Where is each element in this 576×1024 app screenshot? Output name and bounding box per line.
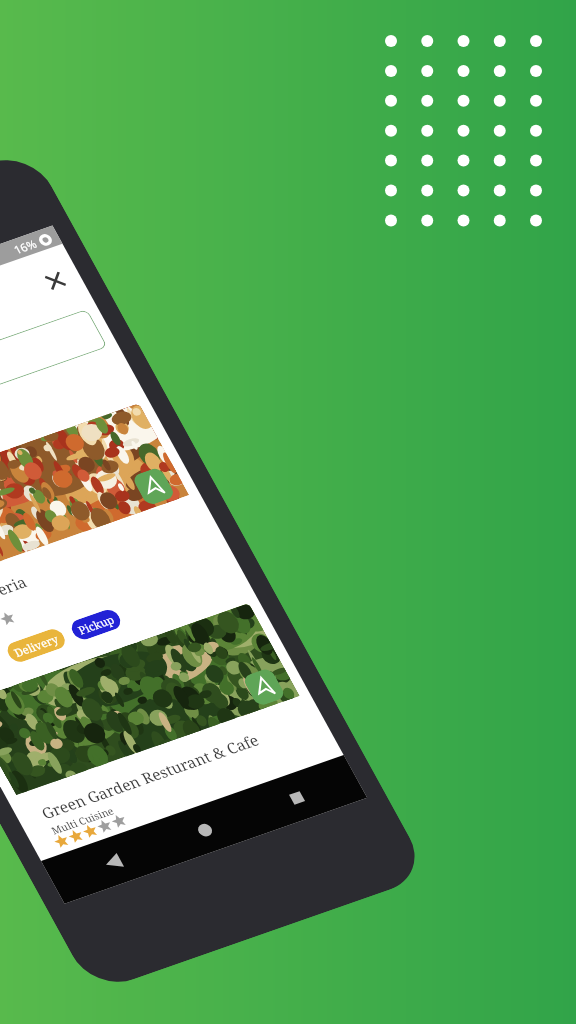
button[interactable]: Back	[92, 843, 134, 882]
button[interactable]: Home	[184, 811, 226, 850]
button[interactable]: Pickup	[62, 592, 130, 657]
button[interactable]: Navigate	[0, 313, 295, 781]
staticText: Green Garden Resturant & Cafe	[32, 661, 268, 891]
button[interactable]: Navigate	[0, 513, 392, 965]
staticText: Delivery	[7, 617, 65, 674]
staticText: Pickup	[71, 601, 121, 648]
staticText: 16%	[7, 229, 43, 264]
button[interactable]: Recents	[276, 778, 318, 817]
button[interactable]: Navigate	[233, 658, 295, 716]
staticText: Multi Cuisine	[45, 784, 120, 857]
button[interactable]	[0, 219, 119, 536]
staticText: Bella Pizzeria	[0, 541, 36, 652]
button[interactable]: Navigate	[123, 457, 185, 515]
button[interactable]: Close	[28, 255, 83, 307]
button[interactable]: Delivery	[0, 609, 74, 682]
